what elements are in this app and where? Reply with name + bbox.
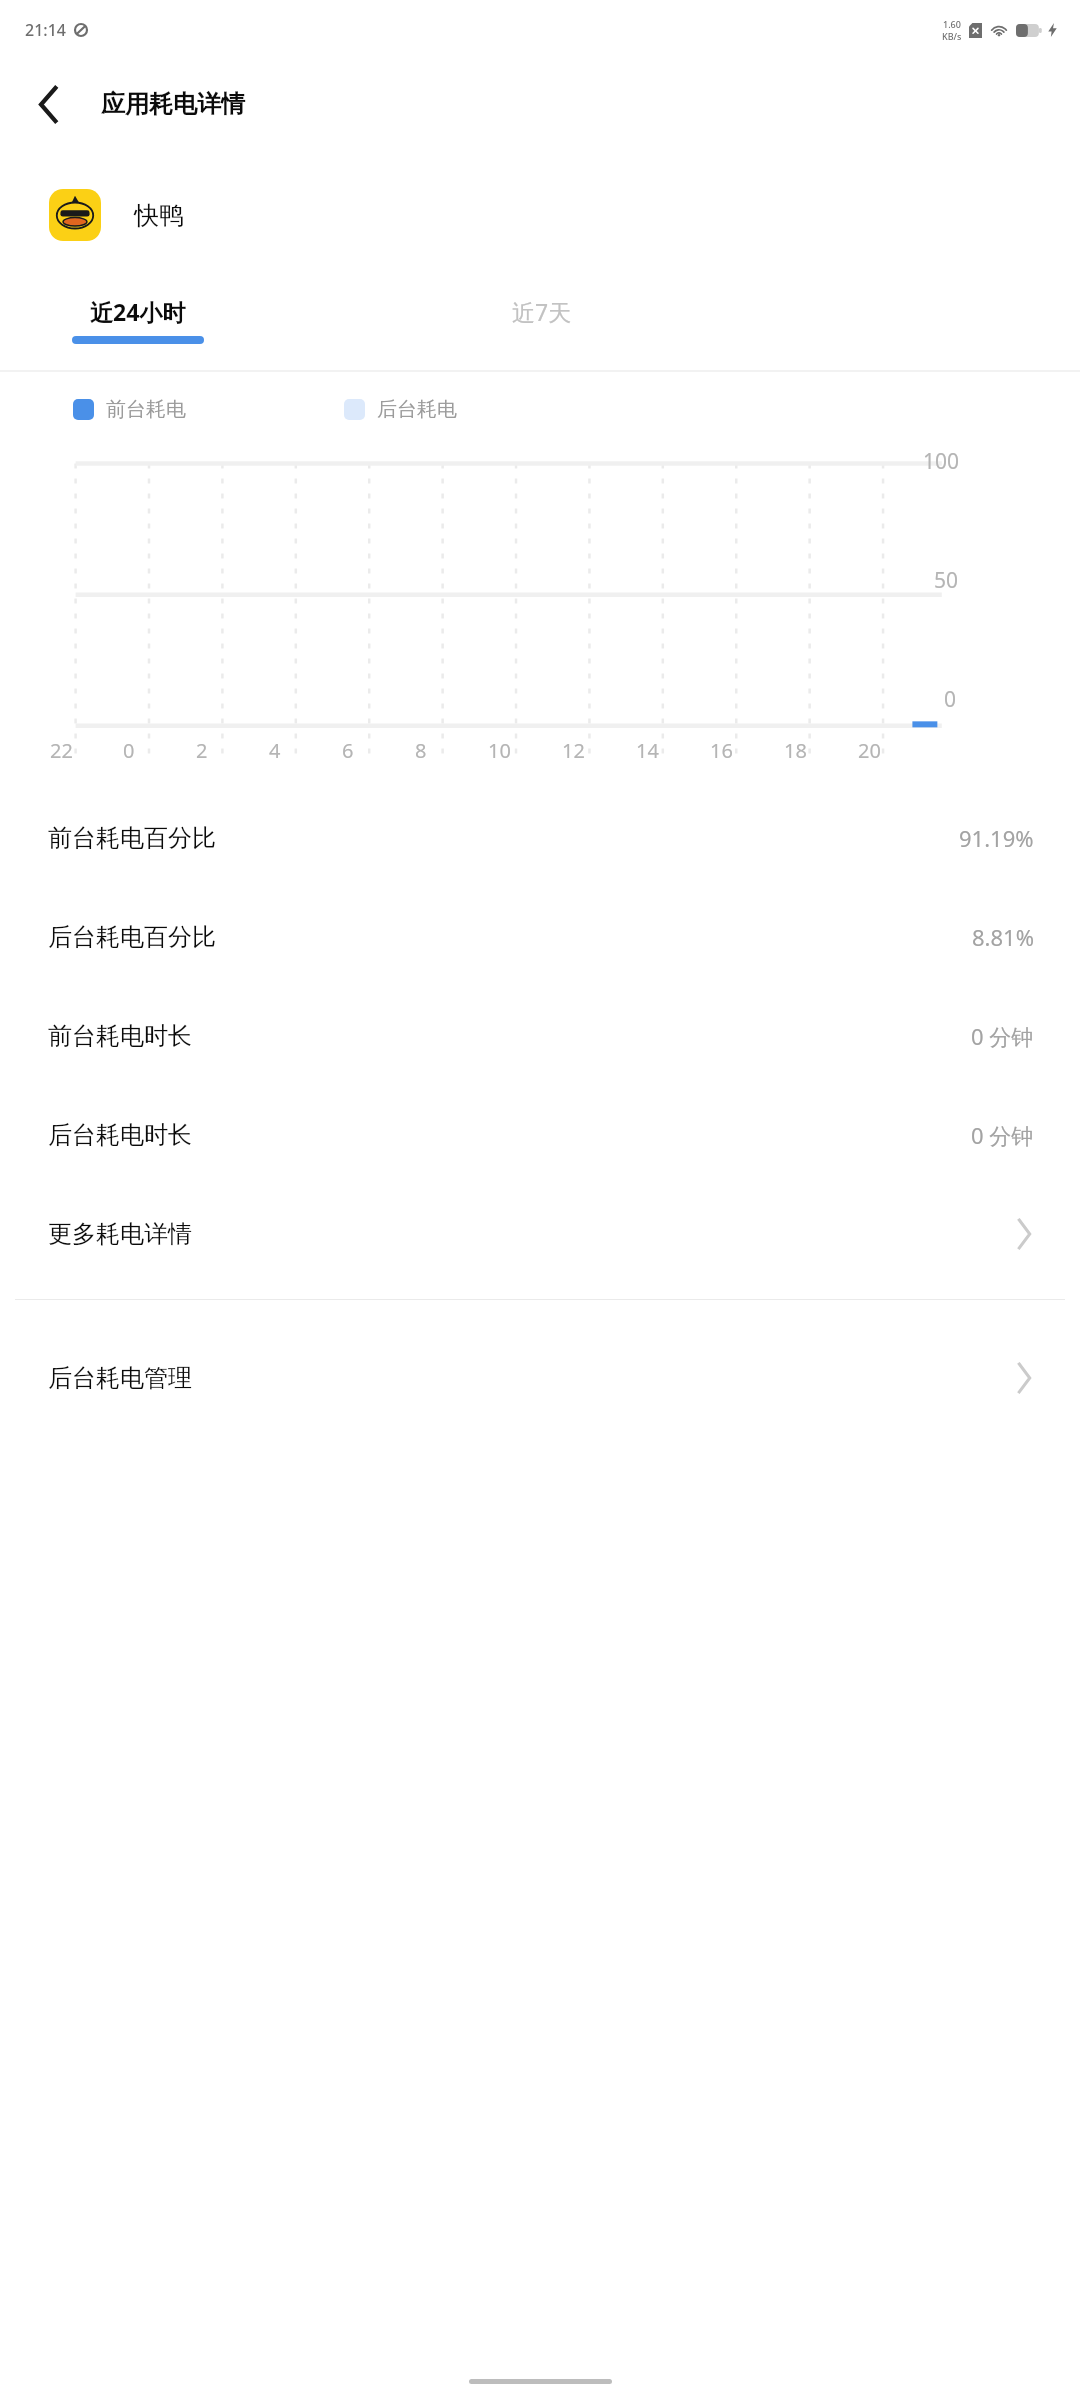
button[interactable]: Back [20,75,78,133]
staticText: 前台耗电时长 [48,1021,192,1051]
staticText: 21:14 [25,19,66,41]
staticText: 0 [944,685,957,714]
staticText: 前台耗电 [106,397,186,422]
button[interactable]: 前台耗电百分比 [0,788,1080,887]
staticText: 16 [710,737,733,764]
staticText: 快鸭 [134,200,184,231]
staticText: 前台耗电百分比 [48,823,216,853]
staticText: 更多耗电详情 [48,1219,192,1249]
button[interactable]: 近24小时 [72,282,204,344]
staticText: KB/s [942,30,962,42]
staticText: 后台耗电管理 [48,1363,192,1393]
staticText: 50 [934,566,959,595]
staticText: 后台耗电百分比 [48,922,216,952]
staticText: 后台耗电时长 [48,1120,192,1150]
staticText: 4 [269,737,281,764]
button[interactable]: 近7天 [452,296,632,327]
button[interactable]: 前台耗电时长 [0,986,1080,1085]
staticText: 0 分钟 [971,1120,1034,1150]
staticText: 22 [50,737,73,764]
staticText: 0 分钟 [971,1021,1034,1051]
staticText: 应用耗电详情 [101,89,245,119]
staticText: 91.19% [959,823,1034,853]
staticText: 12 [562,737,585,764]
button[interactable]: 后台耗电百分比 [0,887,1080,986]
staticText: 8.81% [972,922,1034,952]
button[interactable]: 更多耗电详情 [0,1184,1080,1283]
staticText: 1.60 [943,18,961,30]
staticText: 近24小时 [90,296,186,327]
staticText: 100 [923,447,960,476]
staticText: 近7天 [512,296,572,327]
staticText: 14 [636,737,659,764]
staticText: 后台耗电 [377,397,457,422]
staticText: 20 [858,737,881,764]
staticText: 6 [342,737,354,764]
button[interactable]: 后台耗电时长 [0,1085,1080,1184]
staticText: 10 [488,737,511,764]
staticText: 0 [123,737,135,764]
button[interactable]: 后台耗电管理 [0,1328,1080,1427]
staticText: 18 [784,737,807,764]
staticText: 8 [415,737,427,764]
staticText: 2 [196,737,208,764]
